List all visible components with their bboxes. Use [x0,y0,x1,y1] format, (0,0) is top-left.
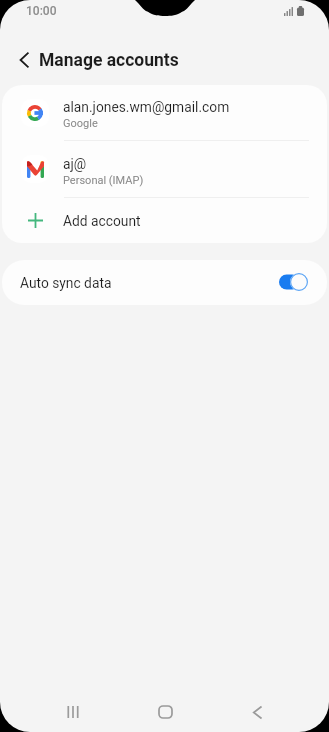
button[interactable]: Back [211,692,303,732]
button[interactable]: Auto sync data [2,260,327,305]
button[interactable]: Add account [2,198,327,243]
button[interactable]: Recent apps [26,692,119,732]
button[interactable]: alan.jones.wm@gmail.com [2,85,327,140]
button[interactable]: Home [119,692,211,732]
staticText: Manage accounts [39,50,179,71]
button[interactable]: Navigate up [0,38,49,82]
staticText: aj@ [63,156,87,172]
staticText: Google [63,117,98,130]
staticText: Add account [63,213,141,229]
staticText: alan.jones.wm@gmail.com [63,99,230,115]
staticText: 10:00 [26,4,57,18]
staticText: Personal (IMAP) [63,174,144,187]
button[interactable]: aj@ [2,141,327,197]
staticText: Auto sync data [20,275,112,291]
